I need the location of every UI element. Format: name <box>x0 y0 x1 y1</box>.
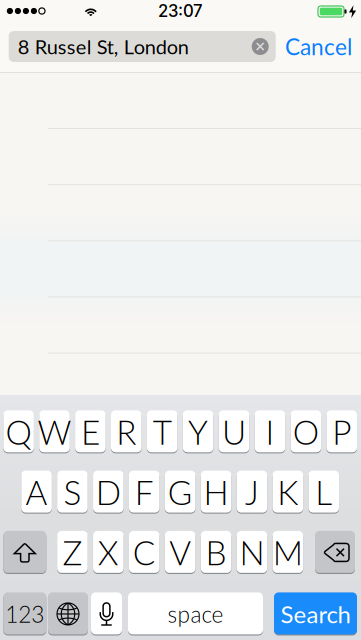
button[interactable]: Cancel <box>281 31 356 62</box>
button[interactable]: I <box>255 410 285 453</box>
staticText: space <box>167 600 223 627</box>
staticText: Y <box>188 412 208 452</box>
staticText: B <box>206 532 227 572</box>
staticText: A <box>26 472 48 512</box>
button[interactable]: C <box>129 531 159 574</box>
button[interactable]: 8 Russel St, London <box>9 31 276 62</box>
button[interactable]: Next keyboard <box>48 592 88 635</box>
staticText: K <box>277 472 298 512</box>
button[interactable]: K <box>272 471 303 514</box>
button[interactable]: X <box>93 531 124 574</box>
button[interactable]: Search <box>274 592 357 635</box>
button[interactable]: space <box>128 592 263 635</box>
button[interactable]: B <box>201 531 231 574</box>
staticText: J <box>245 472 259 512</box>
button[interactable]: F <box>129 471 159 514</box>
staticText: N <box>239 532 264 572</box>
button[interactable]: 123 <box>3 592 46 635</box>
button[interactable]: J <box>237 471 267 514</box>
button[interactable]: R <box>111 410 142 453</box>
button[interactable]: M <box>272 531 303 574</box>
staticText: C <box>133 532 156 572</box>
staticText: O <box>293 412 319 452</box>
staticText: U <box>222 412 246 452</box>
staticText: D <box>96 472 121 512</box>
button[interactable]: P <box>326 410 357 453</box>
button[interactable]: O <box>290 410 321 453</box>
button[interactable]: Shift <box>3 531 46 574</box>
staticText: 8 Russel St, London <box>18 34 189 58</box>
staticText: T <box>153 412 172 452</box>
button[interactable]: U <box>219 410 249 453</box>
button[interactable]: L <box>308 471 339 514</box>
button[interactable]: Y <box>183 410 213 453</box>
staticText: M <box>273 532 303 572</box>
staticText: E <box>81 412 100 452</box>
button[interactable]: S <box>57 471 88 514</box>
staticText: I <box>265 412 274 452</box>
staticText: 23:07 <box>158 1 203 21</box>
button[interactable]: Q <box>3 410 34 453</box>
staticText: Cancel <box>285 33 352 60</box>
button[interactable]: W <box>39 410 70 453</box>
staticText: W <box>37 412 71 452</box>
staticText: H <box>204 472 229 512</box>
button[interactable]: G <box>165 471 195 514</box>
button[interactable]: T <box>147 410 177 453</box>
staticText: 123 <box>5 600 44 627</box>
button[interactable]: E <box>75 410 106 453</box>
staticText: L <box>315 472 332 512</box>
button[interactable]: Dictation <box>91 592 122 635</box>
staticText: F <box>135 472 154 512</box>
staticText: S <box>63 472 81 512</box>
staticText: Z <box>62 532 82 572</box>
staticText: G <box>168 472 193 512</box>
button[interactable]: Z <box>57 531 88 574</box>
staticText: Q <box>6 412 32 452</box>
staticText: P <box>332 412 351 452</box>
button[interactable]: Delete <box>315 531 355 574</box>
staticText: X <box>98 532 119 572</box>
button[interactable]: N <box>237 531 267 574</box>
staticText: V <box>169 532 191 572</box>
staticText: Search <box>280 599 350 628</box>
button[interactable]: D <box>93 471 124 514</box>
button[interactable]: A <box>21 471 52 514</box>
staticText: R <box>116 412 136 452</box>
button[interactable]: H <box>201 471 231 514</box>
button[interactable]: V <box>165 531 195 574</box>
